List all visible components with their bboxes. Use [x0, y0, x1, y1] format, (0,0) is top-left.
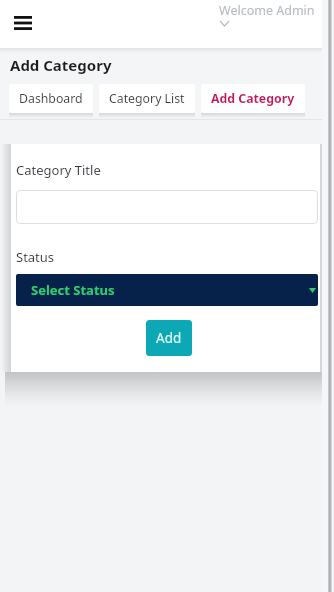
staticText: Status — [16, 248, 55, 266]
staticText: Category Title — [16, 161, 101, 179]
button[interactable]: Open navigation menu — [8, 9, 38, 39]
staticText: Select Status — [31, 281, 115, 299]
button[interactable]: Welcome Admin — [219, 2, 315, 26]
staticText: Add Category — [211, 90, 295, 107]
button[interactable]: Select Status — [16, 274, 318, 306]
button[interactable]: Dashboard — [9, 84, 93, 113]
button[interactable]: Add — [146, 320, 192, 356]
button[interactable]: Category List — [99, 84, 195, 113]
staticText: Add Category — [10, 55, 112, 75]
staticText: Dashboard — [19, 90, 83, 107]
staticText: Category List — [109, 90, 185, 107]
button[interactable]: Category Title text field — [16, 190, 318, 224]
staticText: Welcome Admin — [219, 2, 315, 19]
button[interactable]: Add Category — [201, 84, 305, 113]
staticText: Add — [156, 329, 182, 347]
